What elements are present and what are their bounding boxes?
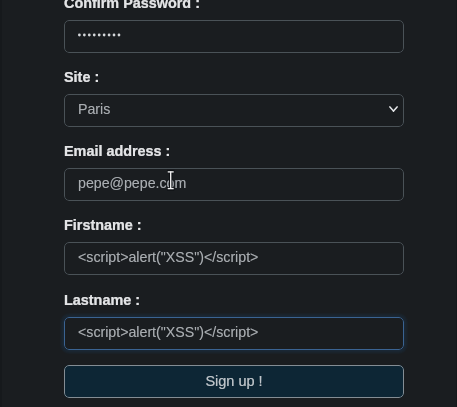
button[interactable]: pepe@pepe.com	[64, 168, 404, 201]
staticText: Email address :	[64, 143, 171, 159]
staticText: Sign up !	[205, 373, 263, 389]
staticText: Firstname :	[64, 217, 142, 233]
button[interactable]: <script>alert("XSS")</script>	[64, 242, 404, 275]
staticText: Confirm Password :	[64, 0, 200, 11]
button[interactable]: Sign up !	[64, 365, 404, 398]
staticText: pepe@pepe.com	[78, 175, 187, 191]
button[interactable]: Paris	[64, 94, 404, 127]
staticText: Site :	[64, 69, 100, 85]
button[interactable]	[64, 20, 404, 53]
staticText: Paris	[78, 101, 111, 117]
button[interactable]: <script>alert("XSS")</script>	[64, 317, 404, 350]
staticText: <script>alert("XSS")</script>	[78, 249, 259, 265]
other: Open site list	[389, 106, 398, 112]
staticText: Lastname :	[64, 292, 140, 308]
staticText: <script>alert("XSS")</script>	[78, 324, 259, 340]
